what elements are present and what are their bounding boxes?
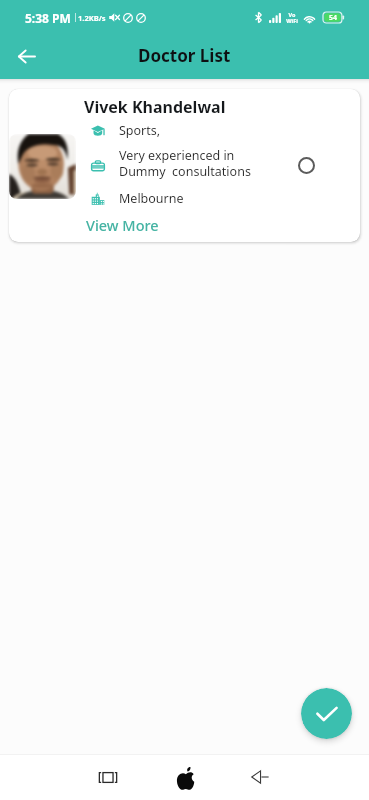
staticText: Doctor List [138,44,231,67]
button[interactable]: Vivek Khandelwal [9,89,360,242]
staticText: 54 [329,13,338,23]
staticText: Very experienced in Dummy consultations [119,147,251,179]
button[interactable]: View More [80,209,165,241]
staticText: Vivek Khandelwal [84,96,226,118]
staticText: Melbourne [119,190,184,207]
button[interactable]: Select doctor [293,152,320,179]
button[interactable]: Confirm [301,688,352,739]
staticText: Vo WiFi [286,11,298,24]
staticText: Sports, [119,122,161,139]
button[interactable]: Recents [86,757,130,797]
button[interactable]: Back [238,757,282,797]
staticText: View More [86,215,159,235]
button[interactable]: Home [163,757,207,797]
staticText: 1.2KB/s [78,13,106,23]
staticText: 5:38 PM [25,10,71,26]
button[interactable]: Back [6,36,46,76]
